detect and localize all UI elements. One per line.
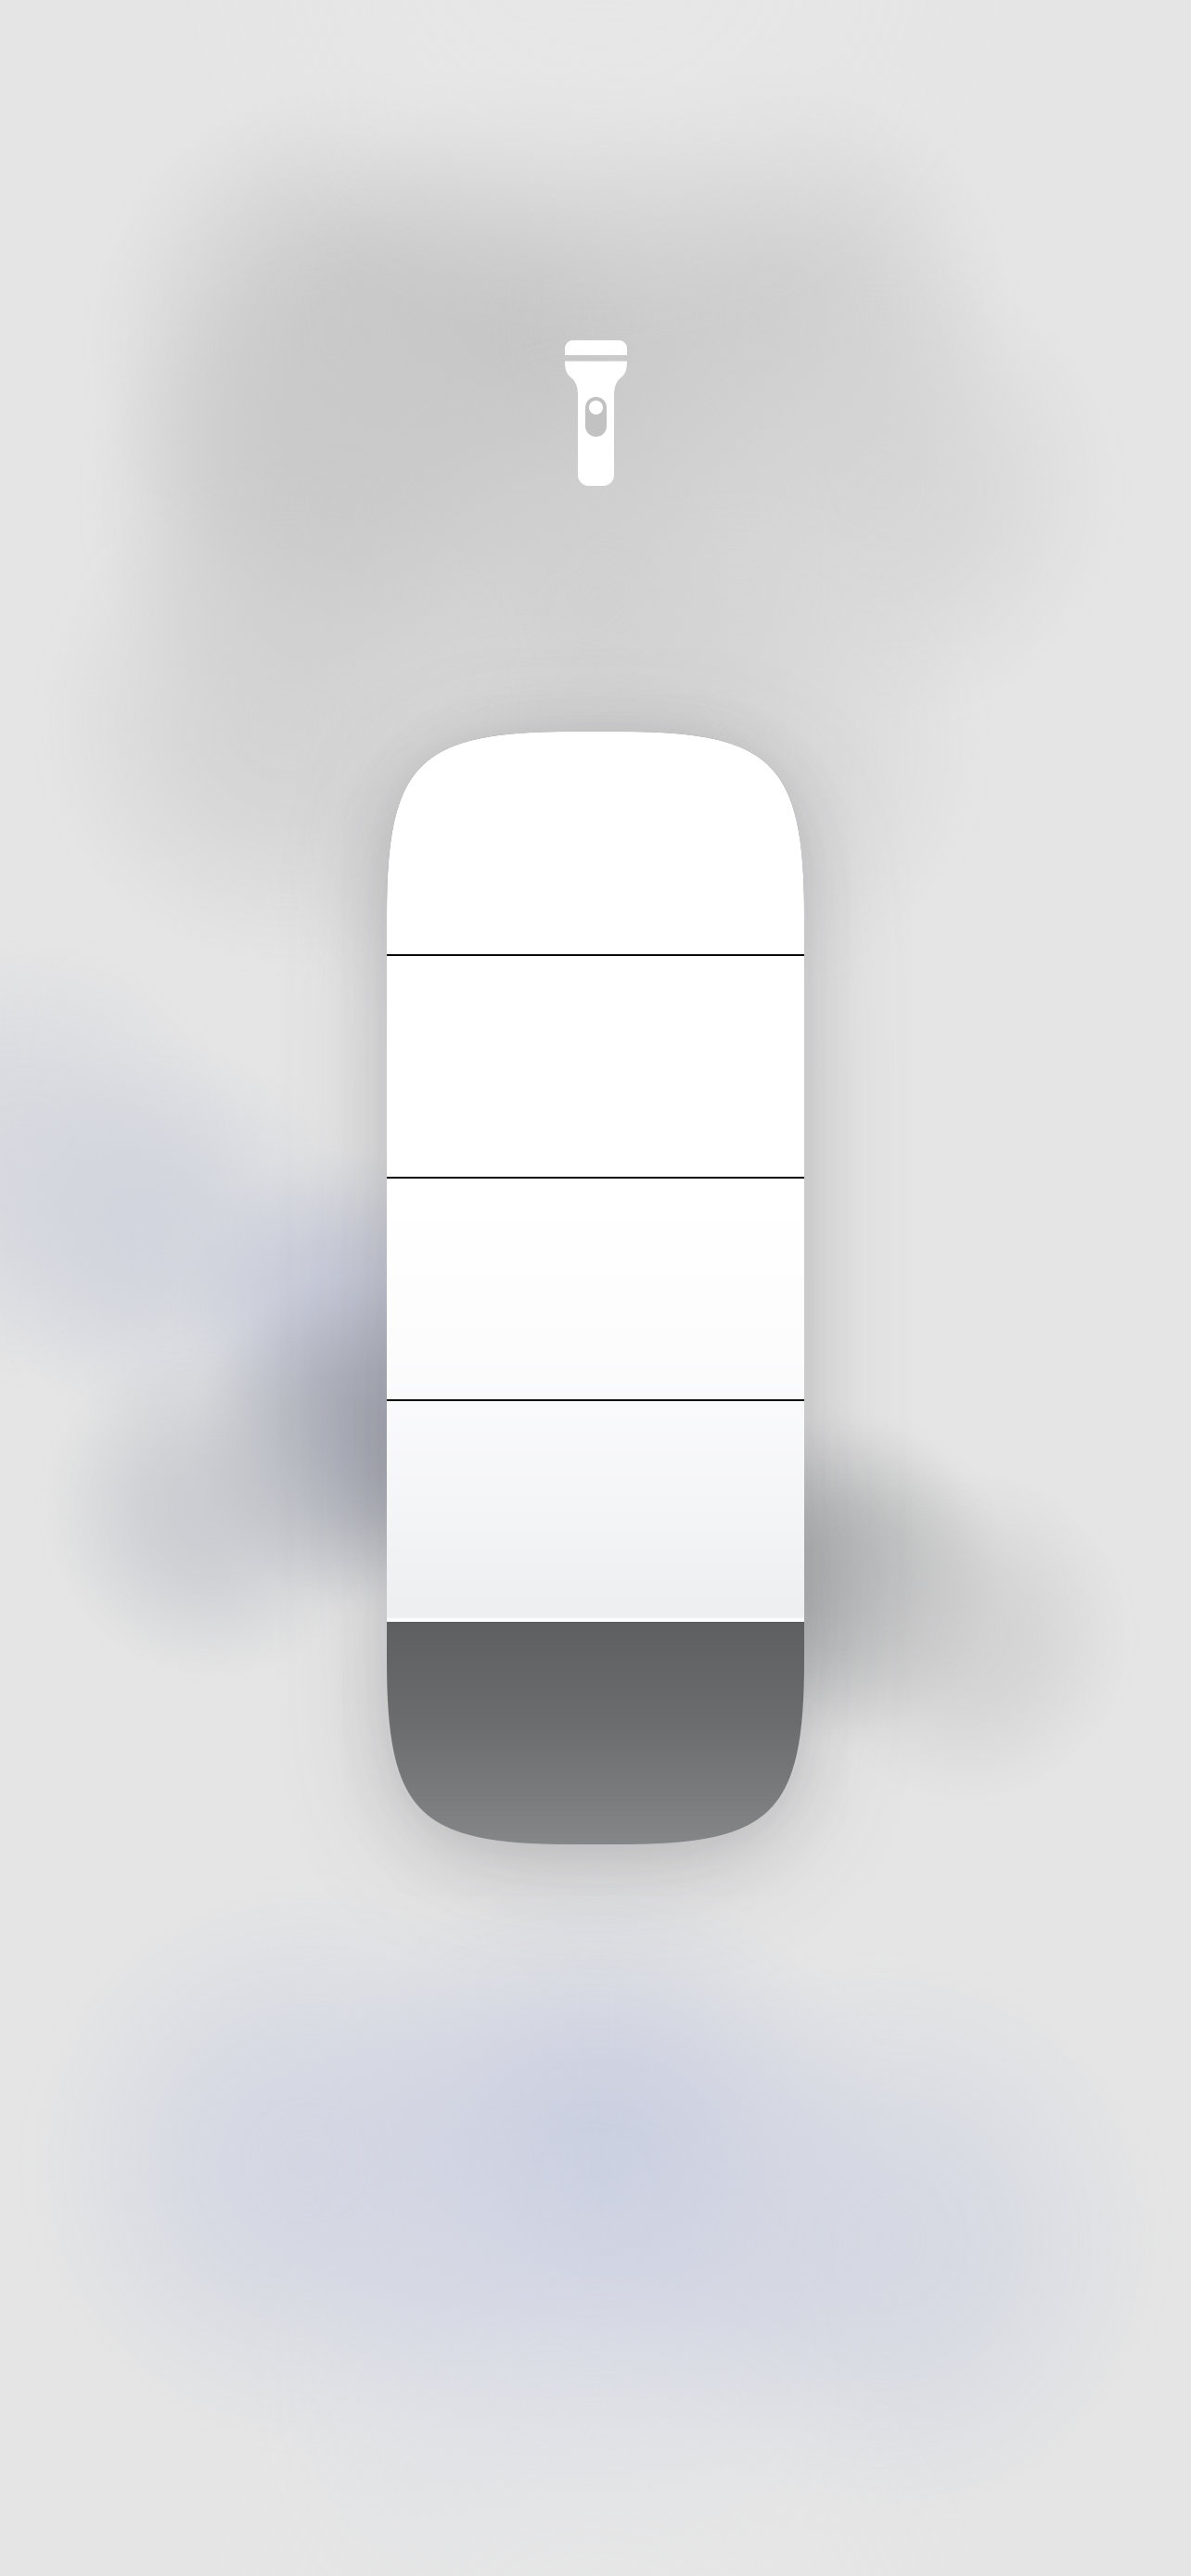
button[interactable]: Flashlight brightness — [387, 732, 804, 1844]
